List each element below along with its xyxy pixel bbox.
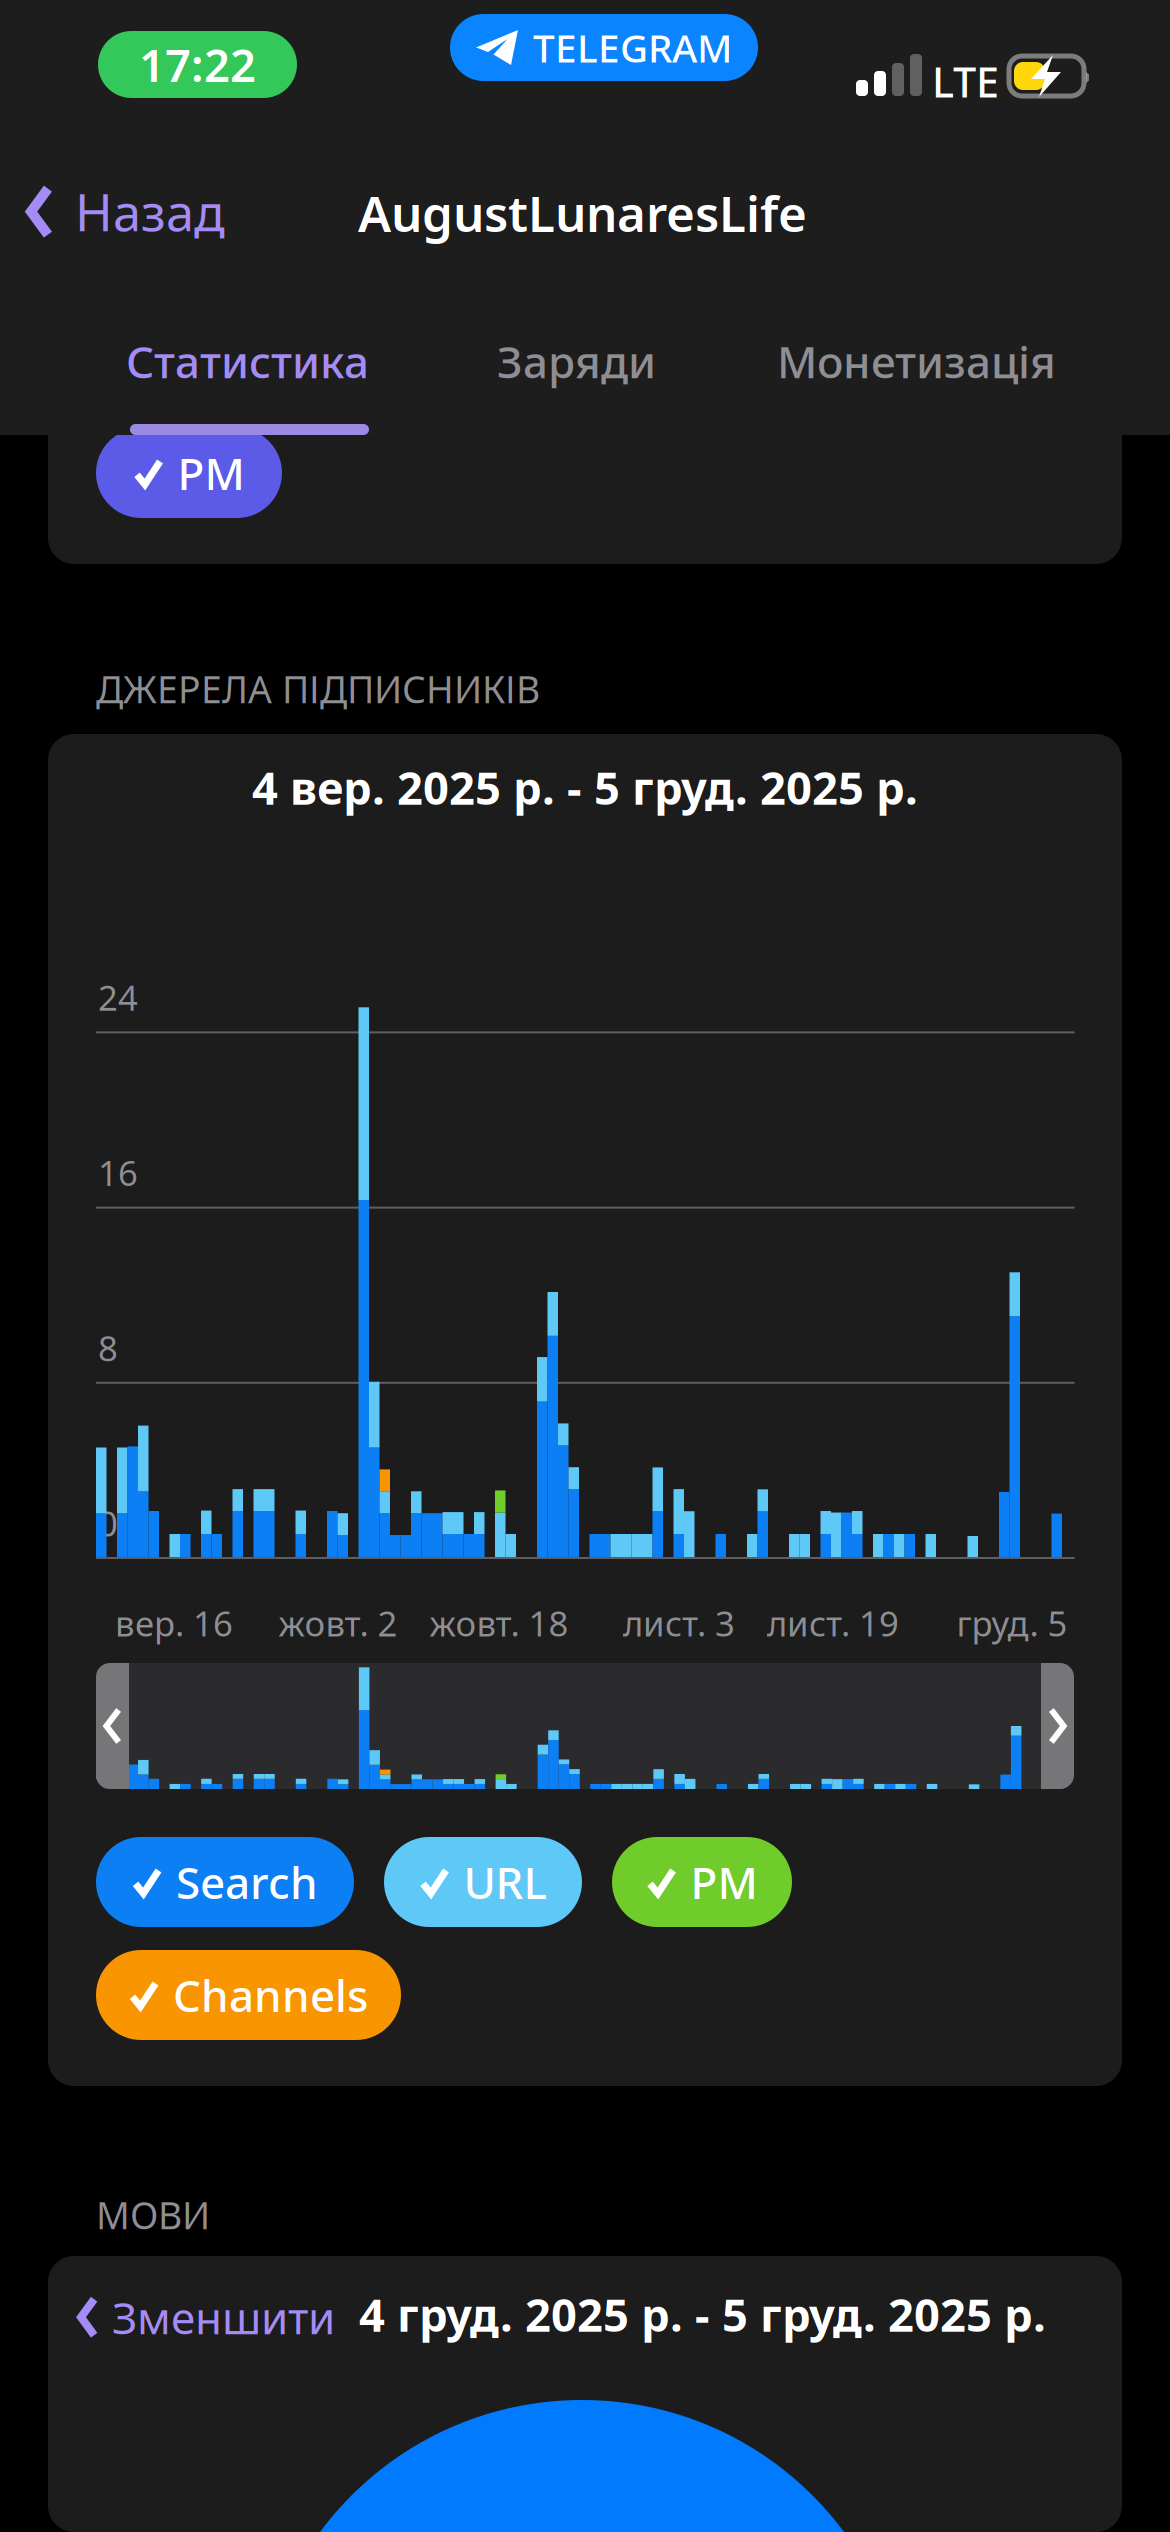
staticText: Назад [75,178,225,245]
staticText: 0 [98,1500,118,1546]
staticText: лист. 19 [767,1600,899,1646]
staticText: 4 вер. 2025 р. - 5 груд. 2025 р. [252,757,918,817]
staticText: 24 [98,974,138,1020]
button[interactable]: Scroll range left [96,1663,129,1789]
button[interactable]: Search [96,1837,354,1927]
button[interactable]: Назад [26,178,225,245]
staticText: PM [690,1853,757,1911]
staticText: груд. 5 [956,1600,1067,1646]
staticText: МОВИ [96,2190,210,2240]
staticText: ДЖЕРЕЛА ПІДПИСНИКІВ [96,664,540,714]
button[interactable]: Заряди [497,332,656,390]
button[interactable]: Монетизація [777,332,1056,390]
staticText: 4 груд. 2025 р. - 5 груд. 2025 р. [359,2284,1046,2344]
staticText: Заряди [497,332,656,390]
staticText: AugustLunaresLife [358,180,807,245]
staticText: TELEGRAM [533,22,732,73]
staticText: LTE [932,54,999,109]
staticText: 17:22 [139,34,256,95]
staticText: вер. 16 [115,1600,233,1646]
button[interactable]: PM [612,1837,792,1927]
staticText: 8 [98,1325,118,1371]
button[interactable]: PM [96,428,282,518]
staticText: лист. 3 [623,1600,735,1646]
staticText: Channels [173,1966,368,2024]
button[interactable]: Зменшити [77,2288,335,2346]
staticText: Статистика [126,332,369,390]
button[interactable]: Статистика [126,332,369,390]
staticText: жовт. 18 [429,1600,568,1646]
button[interactable]: Scroll range right [1041,1663,1074,1789]
staticText: 16 [98,1150,138,1196]
staticText: URL [463,1853,546,1911]
staticText: Монетизація [777,332,1056,390]
button[interactable]: URL [384,1837,582,1927]
staticText: Search [176,1853,318,1911]
button[interactable]: Channels [96,1950,401,2040]
staticText: Зменшити [112,2288,335,2346]
staticText: жовт. 2 [278,1600,397,1646]
staticText: PM [177,444,244,502]
